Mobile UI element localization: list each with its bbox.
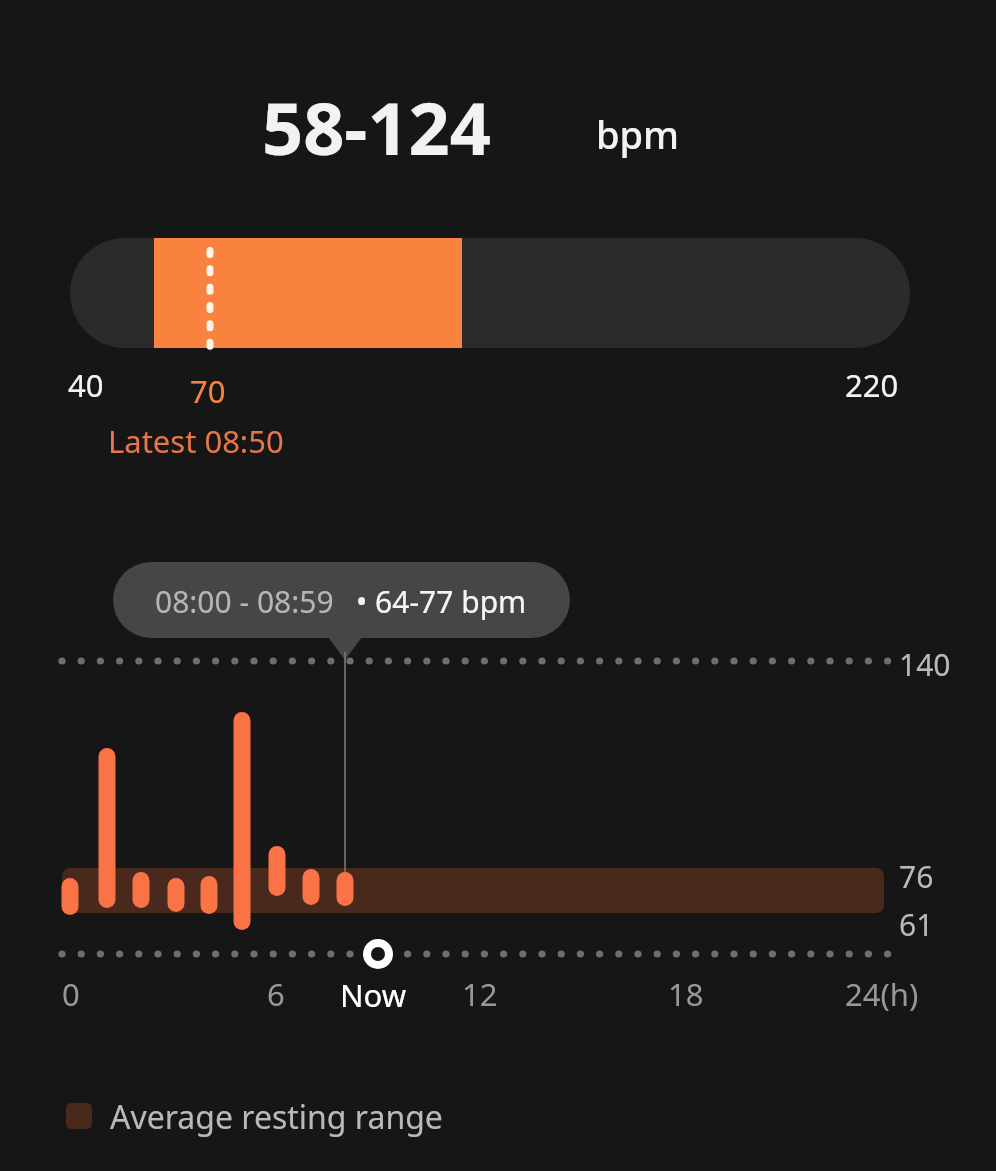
button[interactable]: 58-124 [262, 78, 491, 176]
button[interactable]: 08:00 - 08:59 [113, 562, 570, 652]
staticText: 24(h) [845, 973, 919, 1015]
staticText: • 64-77 bpm [356, 581, 527, 622]
staticText: 6 [267, 973, 285, 1015]
staticText: 18 [668, 973, 704, 1015]
staticText: 0 [62, 973, 80, 1015]
button[interactable]: Average resting range [66, 1095, 399, 1139]
staticText: 12 [462, 973, 498, 1015]
staticText: 61 [899, 904, 934, 945]
staticText: 70 [190, 370, 226, 412]
staticText: 08:00 - 08:59 [155, 581, 342, 622]
staticText: Now [340, 974, 407, 1016]
staticText: 58-124 [262, 78, 491, 176]
button[interactable]: Heart rate range 40 to 220 [70, 238, 910, 348]
staticText: 76 [899, 856, 934, 897]
staticText: Average resting range [110, 1095, 443, 1139]
staticText: Latest 08:50 [108, 420, 284, 462]
staticText: bpm [596, 108, 680, 160]
staticText: 40 [68, 364, 104, 406]
button[interactable]: bpm [596, 108, 680, 160]
staticText: 220 [845, 364, 899, 406]
staticText: 140 [899, 644, 951, 685]
